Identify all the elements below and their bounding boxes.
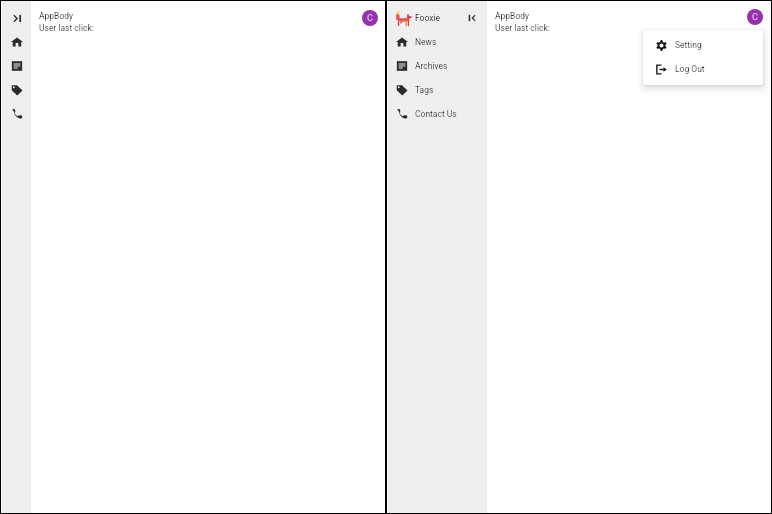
staticText: C [752,12,758,23]
button[interactable]: Account [747,9,763,25]
button[interactable]: Tags [388,78,487,102]
staticText: AppBody [495,11,530,21]
button[interactable]: Contact Us [5,102,29,126]
button[interactable]: Archives [388,54,487,78]
staticText: News [415,37,437,47]
staticText: Archives [415,61,448,71]
staticText: Contact Us [415,109,457,119]
staticText: C [367,13,373,24]
button[interactable]: Log Out [643,57,763,81]
button[interactable]: Tags [5,78,29,102]
button[interactable]: Expand menu [5,6,29,30]
staticText: AppBody [39,11,74,21]
staticText: Tags [415,85,434,95]
button[interactable]: Archives [5,54,29,78]
button[interactable]: Setting [643,33,763,57]
staticText: Setting [675,40,702,50]
button[interactable]: Collapse menu [464,10,480,26]
staticText: User last click: [39,23,94,33]
staticText: Log Out [675,64,705,74]
staticText: User last click: [495,23,550,33]
button[interactable]: Fooxie [388,6,487,30]
staticText: Fooxie [415,13,441,23]
button[interactable]: Contact Us [388,102,487,126]
button[interactable]: News [388,30,487,54]
button[interactable]: News [5,30,29,54]
button[interactable]: Account [362,10,378,26]
